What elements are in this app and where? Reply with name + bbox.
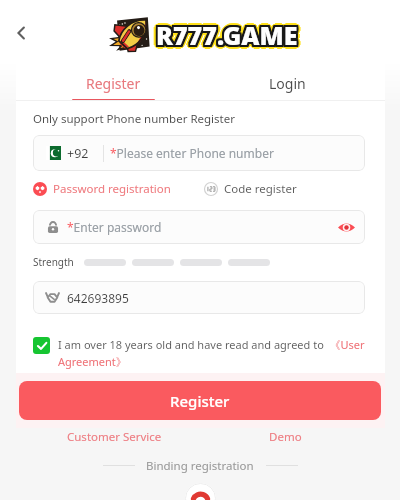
staticText: Only support Phone number Register: [33, 111, 235, 127]
staticText: Register: [86, 74, 141, 93]
staticText: Code register: [224, 181, 297, 197]
staticText: Binding registration: [146, 458, 254, 474]
staticText: +92: [67, 145, 89, 162]
button[interactable]: Register: [21, 61, 206, 101]
staticText: Strength: [33, 255, 74, 269]
staticText: Login: [269, 74, 306, 93]
staticText: Register: [170, 391, 230, 411]
button[interactable]: Register: [19, 381, 381, 420]
staticText: Demo: [269, 429, 302, 445]
button[interactable]: Back: [4, 16, 38, 50]
button[interactable]: Customer service: [185, 483, 216, 500]
button[interactable]: Agree to user agreement: [33, 337, 50, 354]
button[interactable]: *Enter password: [33, 210, 365, 244]
button[interactable]: 642693895: [33, 281, 365, 314]
button[interactable]: Password registration: [33, 181, 171, 197]
button[interactable]: Demo: [269, 429, 302, 445]
button[interactable]: Customer Service: [67, 429, 162, 445]
button[interactable]: +92: [33, 135, 365, 171]
staticText: *Enter password: [67, 219, 162, 235]
button[interactable]: Show password: [331, 212, 361, 242]
staticText: Customer Service: [67, 429, 162, 445]
button[interactable]: Code register: [204, 181, 297, 197]
staticText: I am over 18 years old and have read and…: [58, 337, 365, 370]
staticText: Password registration: [53, 181, 171, 197]
staticText: *Please enter Phone number: [110, 145, 274, 161]
staticText: 642693895: [67, 290, 129, 306]
button[interactable]: Login: [195, 61, 379, 101]
